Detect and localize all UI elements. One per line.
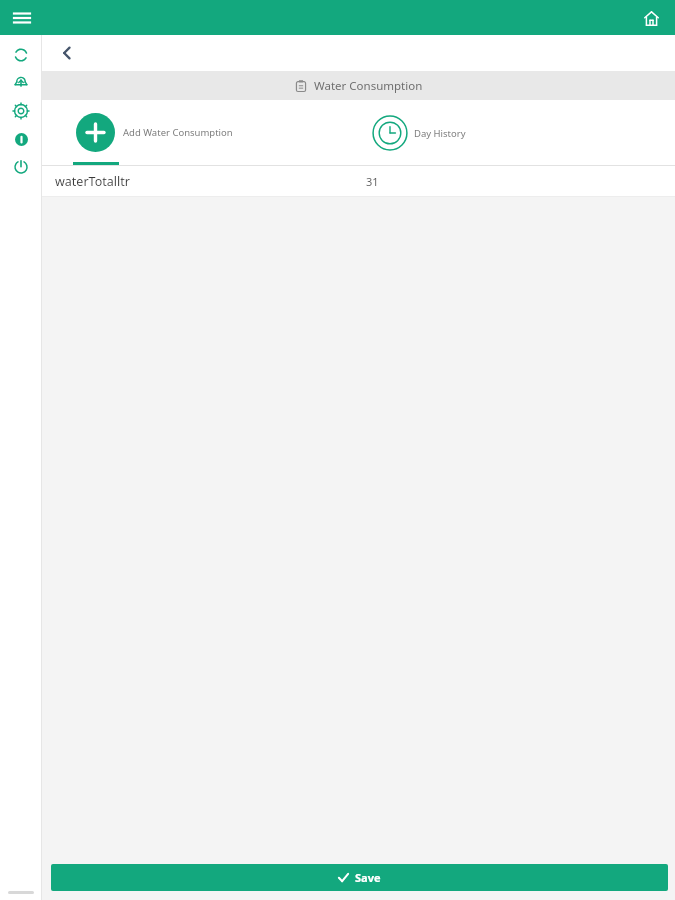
button[interactable]: Upload xyxy=(7,69,35,97)
button[interactable]: Settings xyxy=(7,97,35,125)
button[interactable]: Menu xyxy=(8,4,36,32)
staticText: Save xyxy=(355,870,381,885)
button[interactable]: Add Water Consumption xyxy=(42,100,358,165)
staticText: Add Water Consumption xyxy=(123,126,233,139)
button[interactable]: Info xyxy=(7,125,35,153)
button[interactable]: Home xyxy=(637,4,665,32)
staticText: Day History xyxy=(414,127,466,140)
button[interactable]: Save xyxy=(51,864,668,891)
button[interactable]: Power xyxy=(7,153,35,181)
button[interactable]: Back xyxy=(52,38,82,68)
staticText: Water Consumption xyxy=(314,78,423,94)
button[interactable]: waterTotalltr xyxy=(42,166,675,196)
button[interactable]: Sync xyxy=(7,41,35,69)
button[interactable]: Day History xyxy=(358,100,675,165)
staticText: waterTotalltr xyxy=(55,173,130,190)
staticText: 31 xyxy=(366,174,379,189)
